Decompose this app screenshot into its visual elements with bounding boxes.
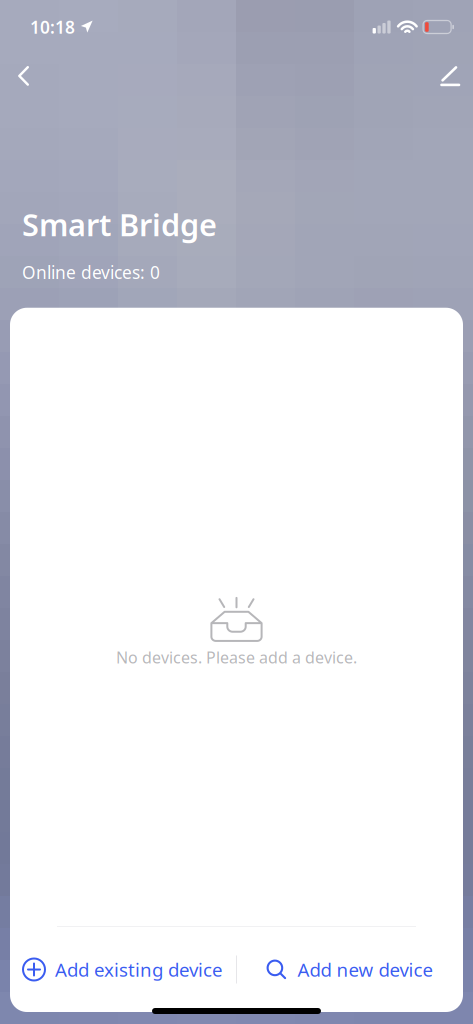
staticText: Smart Bridge [22,204,217,245]
button[interactable]: Add existing device [10,927,236,1012]
staticText: Online devices: 0 [22,261,160,284]
button[interactable]: Edit [425,54,473,98]
button[interactable]: Add new device [237,927,463,1012]
staticText: Add new device [297,957,433,982]
staticText: 10:18 [30,15,75,38]
button[interactable]: Back [0,54,45,98]
staticText: Add existing device [55,957,223,982]
staticText: No devices. Please add a device. [116,647,357,668]
